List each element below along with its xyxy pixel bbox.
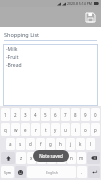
staticText: 3 <box>24 112 27 118</box>
staticText: Shopping List <box>4 31 40 38</box>
button[interactable]: . <box>77 166 87 178</box>
button[interactable]: 1 <box>1 108 10 121</box>
button[interactable]: h <box>56 138 65 150</box>
staticText: n <box>70 155 73 161</box>
button[interactable]: r <box>31 123 40 136</box>
button[interactable]: c <box>37 152 46 164</box>
button[interactable]: p <box>91 123 100 136</box>
staticText: p <box>94 127 97 133</box>
button[interactable]: f <box>36 138 45 150</box>
staticText: Note saved <box>39 153 63 159</box>
staticText: -Fruit <box>6 54 19 61</box>
button[interactable]: Save note <box>84 11 97 24</box>
staticText: i <box>75 127 77 133</box>
staticText: w <box>14 127 18 133</box>
staticText: . <box>81 169 83 175</box>
button[interactable]: 8 <box>71 108 80 121</box>
button[interactable]: t <box>41 123 50 136</box>
staticText: q <box>4 127 7 133</box>
button[interactable]: b <box>57 152 66 164</box>
staticText: 9 <box>84 112 87 118</box>
button[interactable]: 4 <box>31 108 40 121</box>
button[interactable]: j <box>66 138 75 150</box>
staticText: v <box>50 155 53 161</box>
staticText: f <box>40 141 42 147</box>
button[interactable]: s <box>16 138 25 150</box>
button[interactable]: q <box>1 123 10 136</box>
staticText: m <box>79 155 84 161</box>
staticText: t <box>45 127 47 133</box>
button[interactable]: 2 <box>11 108 20 121</box>
staticText: k <box>79 141 82 147</box>
button[interactable]: Enter <box>88 166 100 178</box>
staticText: 4 <box>34 112 37 118</box>
button[interactable]: u <box>61 123 70 136</box>
staticText: e <box>24 127 27 133</box>
button[interactable]: 7 <box>61 108 70 121</box>
button[interactable]: g <box>46 138 55 150</box>
staticText: Sym <box>4 170 11 175</box>
staticText: y <box>54 127 57 133</box>
button[interactable]: Sym <box>1 166 14 178</box>
staticText: z <box>20 155 23 161</box>
staticText: 5 <box>44 112 47 118</box>
staticText: x <box>30 155 33 161</box>
staticText: -Milk <box>6 46 18 53</box>
button[interactable]: 9 <box>81 108 90 121</box>
staticText: u <box>64 127 67 133</box>
staticText: c <box>40 155 43 161</box>
staticText: g <box>49 141 52 147</box>
button[interactable]: a <box>6 138 15 150</box>
staticText: 2 <box>14 112 17 118</box>
staticText: 7 <box>64 112 67 118</box>
staticText: English <box>46 170 58 175</box>
staticText: s <box>19 141 22 147</box>
button[interactable]: l <box>86 138 95 150</box>
button[interactable]: 5 <box>41 108 50 121</box>
button[interactable]: y <box>51 123 60 136</box>
button[interactable]: w <box>11 123 20 136</box>
button[interactable]: 6 <box>51 108 60 121</box>
button[interactable]: x <box>27 152 36 164</box>
button[interactable]: e <box>21 123 30 136</box>
staticText: h <box>59 141 62 147</box>
staticText: 8 <box>74 112 77 118</box>
button[interactable]: d <box>26 138 35 150</box>
button[interactable]: m <box>77 152 86 164</box>
button[interactable]: k <box>76 138 85 150</box>
button[interactable]: 3 <box>21 108 30 121</box>
staticText: o <box>84 127 87 133</box>
staticText: a <box>9 141 12 147</box>
button[interactable]: v <box>47 152 56 164</box>
staticText: l <box>90 141 92 147</box>
staticText: 6 <box>54 112 57 118</box>
staticText: 2020.8 5:14 PM <box>67 1 93 6</box>
button[interactable]: English <box>27 166 76 178</box>
button[interactable]: Backspace <box>87 152 100 164</box>
button[interactable]: Emoji <box>15 166 26 178</box>
button[interactable]: 0 <box>91 108 100 121</box>
staticText: 1 <box>4 112 7 118</box>
button[interactable]: z <box>16 152 26 164</box>
button[interactable]: i <box>71 123 80 136</box>
staticText: 0 <box>94 112 97 118</box>
staticText: b <box>60 155 63 161</box>
button[interactable]: o <box>81 123 90 136</box>
button[interactable]: -Milk <box>6 46 95 104</box>
staticText: d <box>29 141 32 147</box>
button[interactable]: Shift <box>1 152 15 164</box>
staticText: j <box>70 141 72 147</box>
staticText: r <box>35 127 37 133</box>
staticText: -Bread <box>6 62 22 69</box>
button[interactable]: n <box>67 152 76 164</box>
